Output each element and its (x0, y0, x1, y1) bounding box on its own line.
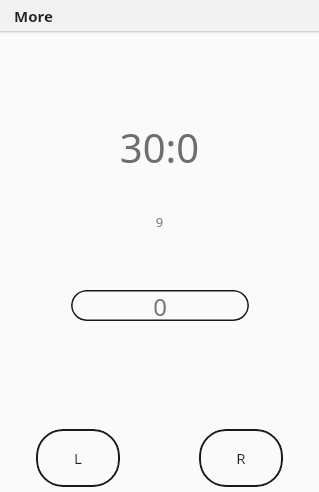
button[interactable]: L (36, 429, 120, 487)
staticText: L (74, 448, 82, 468)
button[interactable]: R (199, 429, 283, 487)
button[interactable]: 0 (71, 290, 249, 321)
staticText: More (14, 6, 53, 26)
staticText: 9 (0, 213, 319, 231)
staticText: R (236, 448, 246, 468)
staticText: 30:0 (0, 120, 319, 174)
staticText: 0 (153, 290, 167, 321)
